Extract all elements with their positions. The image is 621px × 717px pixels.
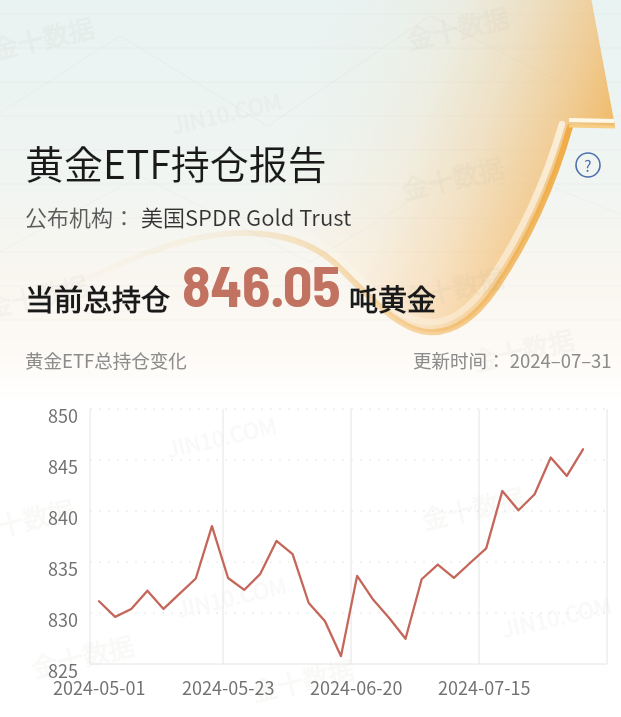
staticText: 2024-07-15 bbox=[438, 674, 531, 700]
staticText: 825 bbox=[48, 657, 78, 683]
staticText: 2024-06-20 bbox=[310, 674, 403, 700]
staticText: 845 bbox=[48, 453, 78, 479]
staticText: 2024-05-01 bbox=[53, 674, 146, 700]
staticText: 2024-05-23 bbox=[182, 674, 275, 700]
staticText: 846.05 bbox=[182, 249, 341, 319]
staticText: 吨黄金 bbox=[349, 277, 437, 319]
staticText: 当前总持仓 bbox=[25, 277, 171, 319]
staticText: 840 bbox=[48, 504, 78, 530]
staticText: 更新时间： 2024–07–31 bbox=[413, 347, 612, 374]
staticText: 850 bbox=[48, 402, 78, 428]
staticText: 美国SPDR Gold Trust bbox=[136, 200, 352, 232]
staticText: 835 bbox=[48, 555, 78, 581]
staticText: ? bbox=[584, 153, 592, 176]
staticText: 公布机构： bbox=[25, 200, 136, 232]
staticText: 黄金ETF总持仓变化 bbox=[25, 347, 187, 374]
staticText: 黄金ETF持仓报告 bbox=[25, 134, 327, 190]
staticText: 830 bbox=[48, 606, 78, 632]
button[interactable]: Help bbox=[575, 152, 601, 178]
